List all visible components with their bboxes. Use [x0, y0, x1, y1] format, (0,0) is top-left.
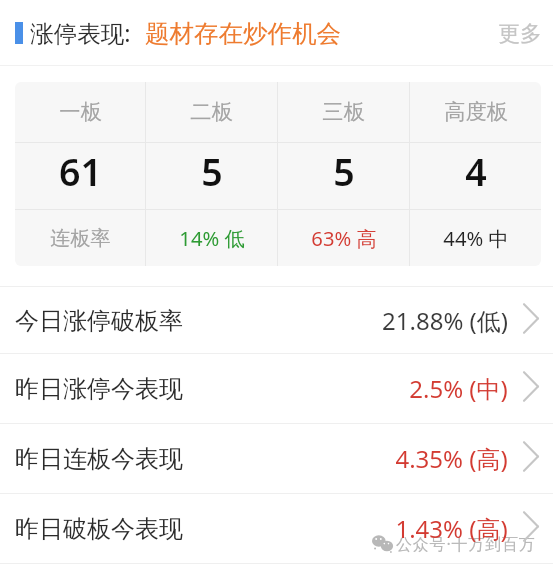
staticText: 题材存在炒作机会: [145, 18, 341, 49]
button[interactable]: 昨日破板今表现: [0, 494, 553, 563]
staticText: 三板: [322, 99, 365, 126]
staticText: 5: [201, 146, 223, 197]
staticText: 连板率: [50, 226, 111, 251]
staticText: 44% 中: [443, 224, 509, 252]
staticText: 高度板: [444, 99, 508, 126]
staticText: 公众号·十万到百万: [396, 533, 536, 555]
staticText: 63% 高: [311, 224, 377, 252]
staticText: 5: [333, 146, 355, 197]
staticText: 涨停表现:: [30, 17, 131, 49]
staticText: 21.88% (低): [382, 304, 508, 337]
button[interactable]: 昨日涨停今表现: [0, 354, 553, 423]
staticText: 昨日破板今表现: [15, 514, 183, 544]
staticText: 昨日涨停今表现: [15, 374, 183, 404]
button[interactable]: 更多: [484, 12, 553, 55]
staticText: 4.35% (高): [395, 442, 508, 475]
button[interactable]: 今日涨停破板率: [0, 287, 553, 353]
staticText: 1.43% (高): [395, 512, 508, 545]
staticText: 14% 低: [179, 224, 245, 252]
staticText: 更多: [498, 20, 542, 47]
staticText: 二板: [190, 99, 233, 126]
staticText: 今日涨停破板率: [15, 306, 183, 336]
staticText: 4: [465, 146, 487, 197]
staticText: 昨日连板今表现: [15, 444, 183, 474]
button[interactable]: 昨日连板今表现: [0, 424, 553, 493]
staticText: 61: [59, 146, 102, 197]
staticText: 2.5% (中): [409, 372, 508, 405]
staticText: 一板: [59, 99, 102, 126]
